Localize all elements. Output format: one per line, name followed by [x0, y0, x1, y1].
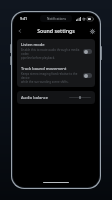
staticText: Sound settings	[37, 27, 75, 34]
staticText: Track bound movement	[21, 66, 67, 71]
staticText: Keeps stereo imaging fixed relative to t…	[21, 72, 80, 84]
staticText: 9:41	[20, 16, 28, 21]
button[interactable]: Listen mode	[17, 39, 95, 63]
button[interactable]: Toggle	[83, 73, 92, 78]
staticText: Notifications	[47, 17, 66, 21]
button[interactable]: Toggle	[83, 49, 92, 54]
staticText: Listen mode	[21, 42, 45, 47]
button[interactable]: Audio balance	[17, 91, 95, 104]
button[interactable]: Settings	[87, 26, 97, 36]
staticText: Audio balance	[21, 95, 49, 100]
staticText: Enable this to route audio through a med…	[21, 48, 80, 60]
button[interactable]: Back	[15, 26, 25, 36]
button[interactable]: Track bound movement	[17, 63, 95, 87]
